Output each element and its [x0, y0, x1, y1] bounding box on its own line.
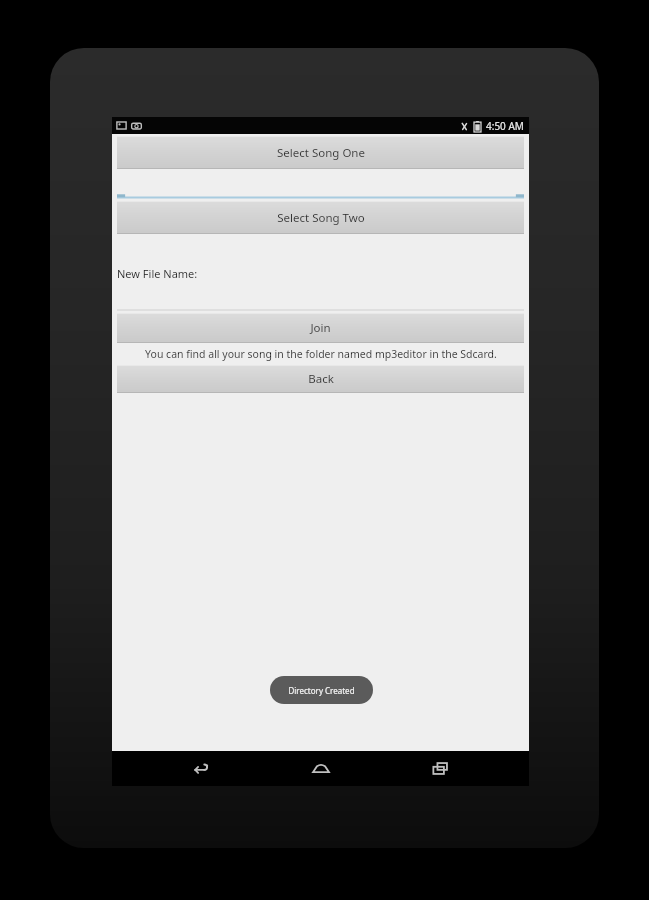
staticText: New File Name: — [117, 266, 198, 281]
staticText: Select Song Two — [277, 210, 365, 226]
staticText: Join — [310, 320, 331, 336]
button[interactable]: Back — [171, 751, 231, 786]
button[interactable]: Back — [117, 365, 524, 393]
staticText: 4:50 AM — [486, 119, 524, 133]
staticText: You can find all your song in the folder… — [145, 347, 497, 361]
staticText: Back — [308, 371, 334, 387]
staticText: Select Song One — [277, 145, 365, 161]
button[interactable]: Home — [291, 751, 351, 786]
button[interactable]: Select Song One — [117, 136, 524, 169]
button[interactable]: Join — [117, 313, 524, 343]
button[interactable] — [117, 285, 524, 311]
button[interactable]: Select Song Two — [117, 201, 524, 234]
staticText: Directory Created — [288, 685, 355, 696]
button[interactable] — [117, 169, 524, 199]
button[interactable]: Recent apps — [410, 751, 470, 786]
